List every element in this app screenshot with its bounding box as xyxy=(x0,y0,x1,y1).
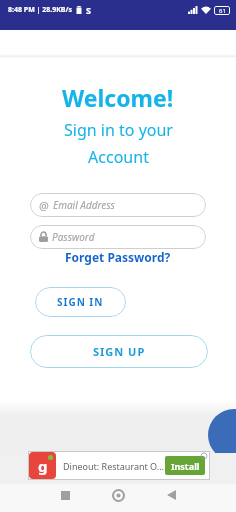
staticText: Password xyxy=(52,230,95,244)
staticText: S xyxy=(86,4,91,16)
button[interactable]: SIGN UP xyxy=(30,335,208,368)
button[interactable]: @ xyxy=(30,193,206,217)
button[interactable]: g xyxy=(28,451,210,480)
staticText: @ xyxy=(39,198,49,213)
button[interactable] xyxy=(45,481,85,509)
staticText: Welcome! xyxy=(62,82,174,113)
staticText: SIGN IN xyxy=(57,295,104,309)
staticText: Email Address xyxy=(53,198,115,212)
button[interactable] xyxy=(151,481,191,509)
staticText: SIGN UP xyxy=(93,344,146,359)
staticText: Dineout: Restaurant O... xyxy=(63,460,165,472)
button[interactable]: Password xyxy=(30,225,206,249)
staticText: Install xyxy=(171,460,200,472)
staticText: Sign in to your Account xyxy=(64,119,173,168)
staticText: 61 xyxy=(219,7,226,15)
button[interactable]: SIGN IN xyxy=(35,287,126,317)
button[interactable] xyxy=(98,481,138,509)
button[interactable]: Forget Password? xyxy=(65,249,171,265)
button[interactable]: Install xyxy=(165,456,205,475)
staticText: 8:48 PM | 28.9KB/s xyxy=(8,5,72,15)
staticText: g xyxy=(38,456,48,476)
